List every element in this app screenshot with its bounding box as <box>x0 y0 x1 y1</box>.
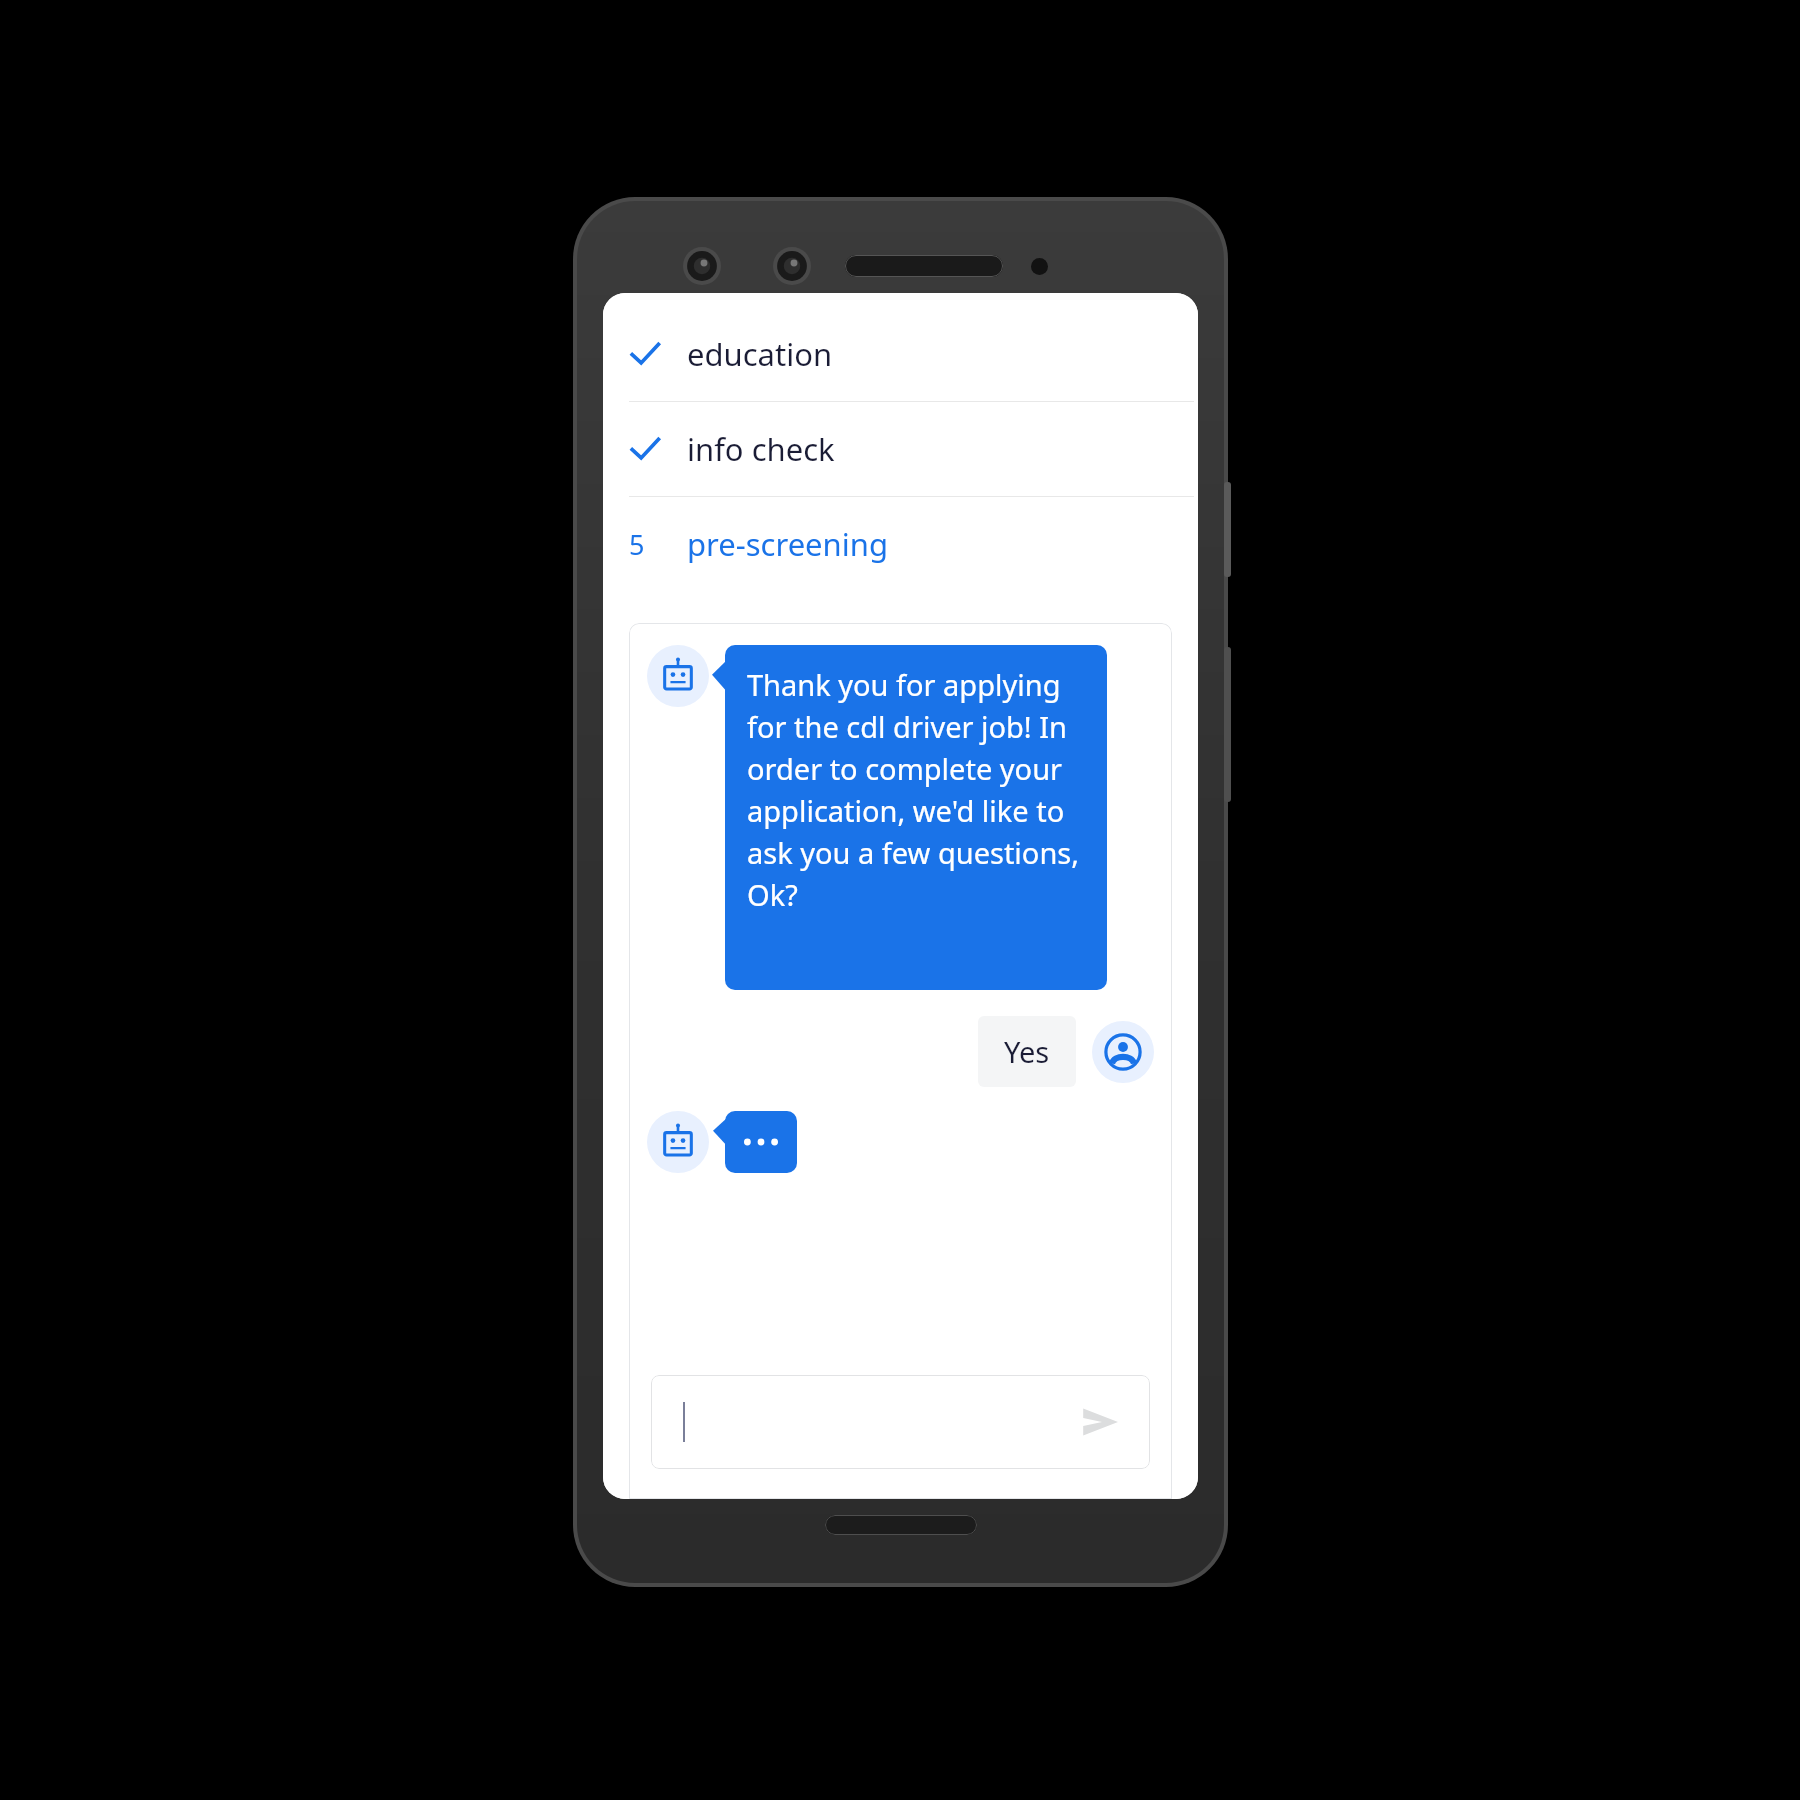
other: Bot <box>647 1111 709 1173</box>
staticText: pre-screening <box>687 523 888 565</box>
staticText: 5 <box>629 526 645 563</box>
button[interactable]: 5 <box>603 497 1198 591</box>
staticText: info check <box>687 428 835 470</box>
button[interactable]: Send <box>651 1375 1150 1469</box>
button[interactable]: education <box>603 307 1198 401</box>
other: Bot <box>647 645 709 707</box>
staticText: education <box>687 333 833 375</box>
button[interactable]: Thank you for applying for the cdl drive… <box>725 645 1107 990</box>
button[interactable]: info check <box>603 402 1198 496</box>
button[interactable]: Yes <box>978 1016 1076 1087</box>
button[interactable] <box>725 1111 797 1173</box>
button[interactable]: Send <box>1078 1400 1122 1444</box>
other: You <box>1092 1021 1154 1083</box>
staticText: Thank you for applying for the cdl drive… <box>747 665 1085 914</box>
staticText: Yes <box>1004 1032 1050 1071</box>
